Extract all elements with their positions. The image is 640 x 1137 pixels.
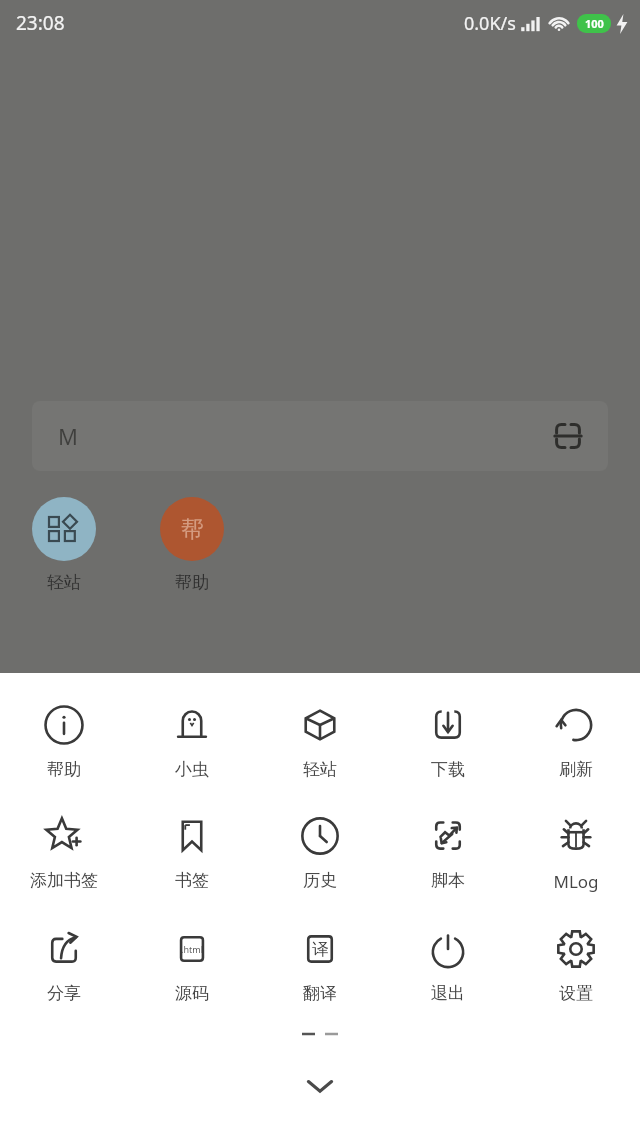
- staticText: 脚本: [431, 870, 465, 891]
- button[interactable]: 书签: [128, 815, 256, 891]
- button[interactable]: 设置: [512, 928, 640, 1004]
- staticText: 分享: [47, 983, 81, 1004]
- button[interactable]: 添加书签: [0, 815, 128, 891]
- button[interactable]: Collapse menu: [0, 1062, 640, 1110]
- button[interactable]: 退出: [384, 928, 512, 1004]
- staticText: 0.0K/s: [464, 11, 516, 36]
- staticText: 源码: [175, 983, 209, 1004]
- button[interactable]: 译: [256, 928, 384, 1004]
- button[interactable]: M: [32, 401, 608, 471]
- staticText: M: [58, 421, 78, 451]
- button[interactable]: MLog: [512, 815, 640, 893]
- button[interactable]: 分享: [0, 928, 128, 1004]
- staticText: MLog: [553, 870, 599, 893]
- button[interactable]: 脚本: [384, 815, 512, 891]
- staticText: 刷新: [559, 759, 593, 780]
- button[interactable]: 历史: [256, 815, 384, 891]
- staticText: 下载: [431, 759, 465, 780]
- staticText: 100: [585, 16, 604, 31]
- staticText: 轻站: [303, 759, 337, 780]
- staticText: 帮助: [175, 572, 209, 593]
- staticText: .html: [181, 943, 203, 955]
- button[interactable]: 帮: [150, 497, 234, 593]
- staticText: 历史: [303, 870, 337, 891]
- staticText: 23:08: [16, 10, 65, 36]
- staticText: 轻站: [47, 572, 81, 593]
- staticText: 退出: [431, 983, 465, 1004]
- staticText: 添加书签: [30, 870, 98, 891]
- button[interactable]: 帮助: [0, 704, 128, 780]
- staticText: 翻译: [303, 983, 337, 1004]
- staticText: 帮助: [47, 759, 81, 780]
- staticText: 小虫: [175, 759, 209, 780]
- button[interactable]: Scan QR code: [546, 414, 590, 458]
- button[interactable]: 轻站: [22, 497, 106, 593]
- button[interactable]: 下载: [384, 704, 512, 780]
- staticText: 设置: [559, 983, 593, 1004]
- button[interactable]: 刷新: [512, 704, 640, 780]
- staticText: 帮: [181, 515, 204, 544]
- button[interactable]: 轻站: [256, 704, 384, 780]
- staticText: 译: [312, 939, 329, 960]
- staticText: 书签: [175, 870, 209, 891]
- button[interactable]: 小虫: [128, 704, 256, 780]
- button[interactable]: .html: [128, 928, 256, 1004]
